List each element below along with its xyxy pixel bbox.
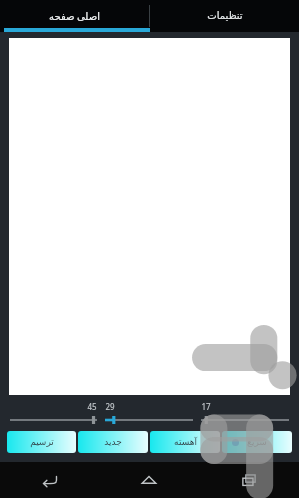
button[interactable]: Recent apps bbox=[199, 462, 299, 498]
button[interactable]: 29 bbox=[101, 401, 197, 425]
staticText: 17 bbox=[201, 401, 211, 412]
button[interactable] bbox=[9, 38, 290, 395]
button[interactable]: سریع bbox=[222, 431, 292, 453]
staticText: آهسته bbox=[174, 437, 197, 447]
staticText: سریع bbox=[247, 437, 267, 447]
staticText: اصلی صفحه bbox=[49, 9, 100, 23]
button[interactable]: 17 bbox=[197, 401, 293, 425]
staticText: ترسیم bbox=[30, 437, 54, 447]
button[interactable]: ترسیم bbox=[7, 431, 76, 453]
button[interactable]: 45 bbox=[6, 401, 101, 425]
button[interactable]: Back bbox=[0, 462, 99, 498]
staticText: 29 bbox=[105, 401, 115, 412]
button[interactable]: Home bbox=[99, 462, 199, 498]
staticText: جدید bbox=[104, 437, 122, 447]
button[interactable]: جدید bbox=[78, 431, 148, 453]
button[interactable]: تنظیمات bbox=[150, 0, 299, 32]
staticText: تنظیمات bbox=[207, 10, 243, 22]
staticText: 45 bbox=[87, 401, 97, 412]
button[interactable]: آهسته bbox=[150, 431, 220, 453]
button[interactable]: اصلی صفحه bbox=[0, 0, 149, 32]
